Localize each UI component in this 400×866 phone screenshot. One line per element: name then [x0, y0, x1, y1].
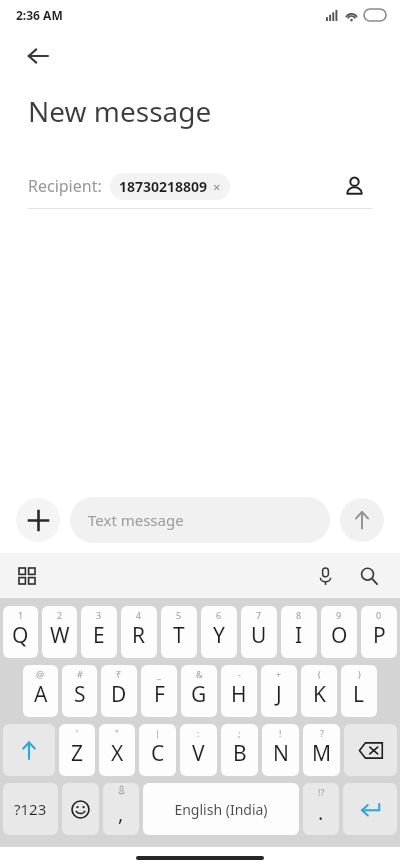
staticText: ": [115, 727, 119, 739]
button[interactable]: Search: [352, 559, 386, 593]
button[interactable]: 1: [3, 606, 38, 658]
staticText: A: [34, 680, 48, 709]
button[interactable]: :: [180, 724, 217, 776]
staticText: T: [173, 621, 185, 650]
button[interactable]: |: [139, 724, 176, 776]
button[interactable]: Emoji: [62, 783, 99, 835]
button[interactable]: +: [261, 665, 297, 717]
button[interactable]: English (India): [143, 783, 299, 835]
button[interactable]: #: [62, 665, 97, 717]
staticText: !?: [318, 786, 325, 798]
staticText: ₹: [116, 668, 122, 680]
staticText: +: [276, 668, 282, 680]
staticText: .: [318, 799, 324, 826]
staticText: V: [192, 739, 205, 768]
staticText: R: [132, 621, 146, 650]
staticText: 0: [376, 609, 382, 621]
staticText: N: [273, 739, 289, 768]
staticText: M: [312, 739, 332, 768]
button[interactable]: ,: [103, 783, 139, 835]
button[interactable]: Send: [340, 498, 384, 542]
button[interactable]: Enter: [343, 783, 397, 835]
staticText: 1: [18, 609, 24, 621]
staticText: 8: [296, 609, 302, 621]
staticText: -: [238, 668, 241, 680]
button[interactable]: 3: [81, 606, 117, 658]
staticText: B: [233, 739, 247, 768]
staticText: Text message: [88, 510, 184, 530]
staticText: @: [36, 668, 45, 680]
button[interactable]: 2: [42, 606, 77, 658]
staticText: S: [74, 680, 86, 709]
button[interactable]: Backspace: [344, 724, 397, 776]
staticText: G: [191, 680, 207, 709]
staticText: ): [358, 668, 361, 680]
staticText: ?: [320, 727, 324, 739]
button[interactable]: ₹: [101, 665, 137, 717]
staticText: 2: [57, 609, 63, 621]
button[interactable]: 6: [201, 606, 237, 658]
staticText: :: [197, 727, 200, 739]
staticText: 2:36 AM: [16, 7, 63, 23]
staticText: H: [231, 680, 247, 709]
staticText: F: [154, 680, 165, 709]
button[interactable]: Add attachment: [16, 498, 60, 542]
staticText: 6: [216, 609, 222, 621]
staticText: |: [155, 727, 160, 739]
button[interactable]: !: [262, 724, 299, 776]
staticText: ': [76, 727, 79, 739]
staticText: I: [295, 621, 303, 650]
staticText: 18730218809: [119, 177, 208, 196]
button[interactable]: 4: [121, 606, 157, 658]
staticText: Y: [213, 621, 225, 650]
staticText: English (India): [174, 800, 268, 819]
button[interactable]: Shift: [3, 724, 55, 776]
button[interactable]: Contacts: [336, 168, 372, 204]
button[interactable]: !?: [303, 783, 339, 835]
staticText: ,: [118, 800, 124, 827]
staticText: ×: [213, 178, 221, 196]
staticText: E: [93, 621, 105, 650]
staticText: _: [157, 668, 161, 680]
staticText: 3: [96, 609, 102, 621]
button[interactable]: Voice input: [308, 559, 342, 593]
staticText: !: [279, 727, 282, 739]
staticText: J: [276, 680, 282, 709]
staticText: Q: [12, 621, 29, 650]
staticText: 4: [136, 609, 142, 621]
staticText: 9: [336, 609, 342, 621]
button[interactable]: (: [301, 665, 337, 717]
button[interactable]: 7: [241, 606, 277, 658]
staticText: Z: [71, 739, 84, 768]
button[interactable]: -: [221, 665, 257, 717]
button[interactable]: 9: [321, 606, 357, 658]
staticText: D: [111, 680, 127, 709]
staticText: ?123: [14, 799, 47, 819]
button[interactable]: 5: [161, 606, 197, 658]
staticText: #: [77, 668, 83, 680]
staticText: 5: [176, 609, 182, 621]
staticText: K: [313, 680, 326, 709]
button[interactable]: Text message: [70, 497, 330, 543]
staticText: L: [353, 680, 365, 709]
button[interactable]: @: [23, 665, 58, 717]
staticText: New message: [28, 92, 212, 130]
button[interactable]: 18730218809: [110, 173, 230, 200]
button[interactable]: ?123: [3, 783, 58, 835]
staticText: W: [50, 621, 70, 650]
staticText: X: [111, 739, 124, 768]
button[interactable]: ?: [303, 724, 340, 776]
button[interactable]: &: [181, 665, 217, 717]
button[interactable]: Keyboard menu: [10, 559, 44, 593]
button[interactable]: 0: [361, 606, 397, 658]
button[interactable]: Back: [14, 32, 62, 80]
button[interactable]: ;: [221, 724, 258, 776]
staticText: C: [151, 739, 165, 768]
button[interactable]: ): [341, 665, 377, 717]
button[interactable]: 8: [281, 606, 317, 658]
staticText: P: [373, 621, 386, 650]
button[interactable]: ": [99, 724, 135, 776]
button[interactable]: _: [141, 665, 177, 717]
button[interactable]: ': [59, 724, 95, 776]
staticText: U: [251, 621, 267, 650]
